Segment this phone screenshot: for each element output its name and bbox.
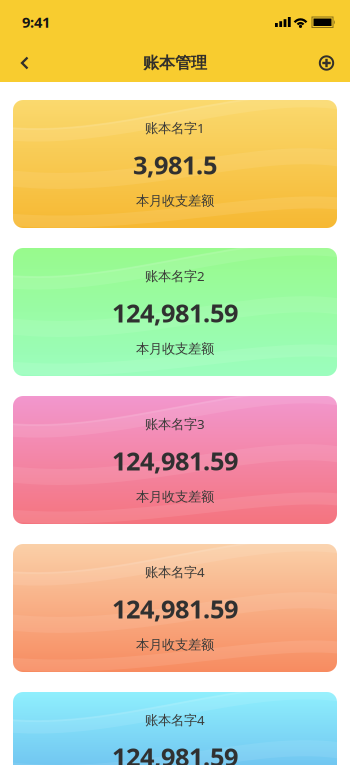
staticText: 账本名字3 xyxy=(145,415,205,433)
staticText: 账本名字1 xyxy=(145,119,205,137)
staticText: 本月收支差额 xyxy=(136,489,214,505)
staticText: 3,981.5 xyxy=(133,148,217,181)
staticText: 本月收支差额 xyxy=(136,637,214,653)
staticText: 账本名字4 xyxy=(145,711,205,729)
button[interactable]: 账本名字2 xyxy=(13,248,337,376)
staticText: 124,981.59 xyxy=(112,296,238,329)
staticText: 124,981.59 xyxy=(112,592,238,625)
staticText: 账本名字2 xyxy=(145,267,205,285)
button[interactable]: 账本名字3 xyxy=(13,396,337,524)
staticText: 账本管理 xyxy=(143,53,207,73)
button[interactable]: 账本名字4 xyxy=(13,544,337,672)
staticText: 124,981.59 xyxy=(112,444,238,477)
staticText: 本月收支差额 xyxy=(136,341,214,357)
staticText: 本月收支差额 xyxy=(136,193,214,209)
button[interactable]: Add xyxy=(319,45,350,80)
staticText: 账本名字4 xyxy=(145,563,205,581)
button[interactable]: 账本名字1 xyxy=(13,100,337,228)
button[interactable]: 账本名字4 xyxy=(13,692,337,765)
button[interactable]: Back xyxy=(0,45,30,80)
staticText: 9:41 xyxy=(22,12,50,32)
staticText: 124,981.59 xyxy=(112,740,238,765)
